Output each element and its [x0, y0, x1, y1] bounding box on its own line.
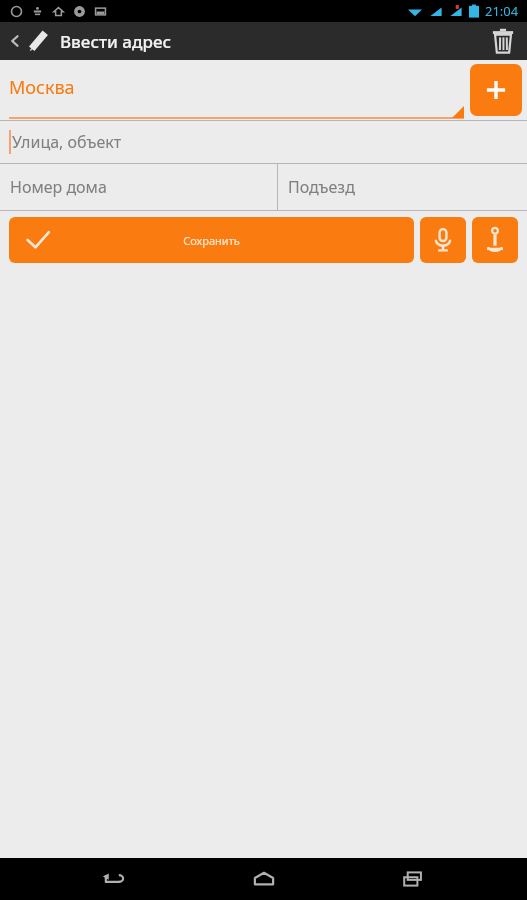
button[interactable]: Delete	[479, 22, 527, 60]
staticText: 21:04	[485, 2, 519, 20]
button[interactable]: Улица, объект	[0, 121, 527, 163]
staticText: Ввести адрес	[60, 30, 171, 53]
button[interactable]: Home	[229, 858, 299, 900]
button[interactable]: Add	[470, 64, 522, 116]
button[interactable]: Сохранить	[9, 217, 414, 263]
button[interactable]: Москва	[9, 61, 464, 119]
staticText: Сохранить	[183, 233, 240, 248]
button[interactable]: Voice input	[420, 217, 466, 263]
staticText: Номер дома	[10, 176, 107, 198]
button[interactable]: Номер дома	[0, 164, 277, 210]
button[interactable]: Pick on map	[472, 217, 518, 263]
staticText: Москва	[9, 75, 75, 100]
button[interactable]: Recent apps	[378, 858, 448, 900]
button[interactable]: Подъезд	[278, 164, 527, 210]
button[interactable]: Ввести адрес	[0, 22, 179, 60]
button[interactable]: Back	[79, 858, 149, 900]
staticText: Улица, объект	[12, 131, 122, 153]
staticText: Подъезд	[288, 176, 355, 198]
